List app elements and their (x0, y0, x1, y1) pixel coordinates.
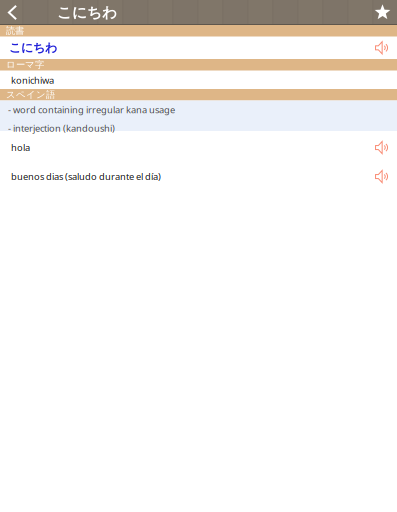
button[interactable]: Play pronunciation (367, 131, 397, 160)
staticText: 読書 (6, 25, 24, 36)
staticText: こにちわ (57, 3, 117, 21)
staticText: スペイン語 (6, 89, 55, 100)
staticText: こにちわ (9, 40, 57, 55)
button[interactable]: Play pronunciation (367, 160, 397, 189)
staticText: - interjection (kandoushi) (8, 122, 115, 134)
staticText: - word containing irregular kana usage (8, 103, 175, 116)
staticText: ローマ字 (6, 59, 44, 70)
button[interactable]: Favorite (368, 0, 397, 25)
button[interactable]: Back (0, 0, 25, 25)
staticText: konichiwa (11, 74, 54, 86)
staticText: buenos dias (saludo durante el día) (11, 170, 161, 183)
button[interactable]: Play pronunciation (367, 36, 397, 59)
staticText: hola (11, 141, 30, 154)
